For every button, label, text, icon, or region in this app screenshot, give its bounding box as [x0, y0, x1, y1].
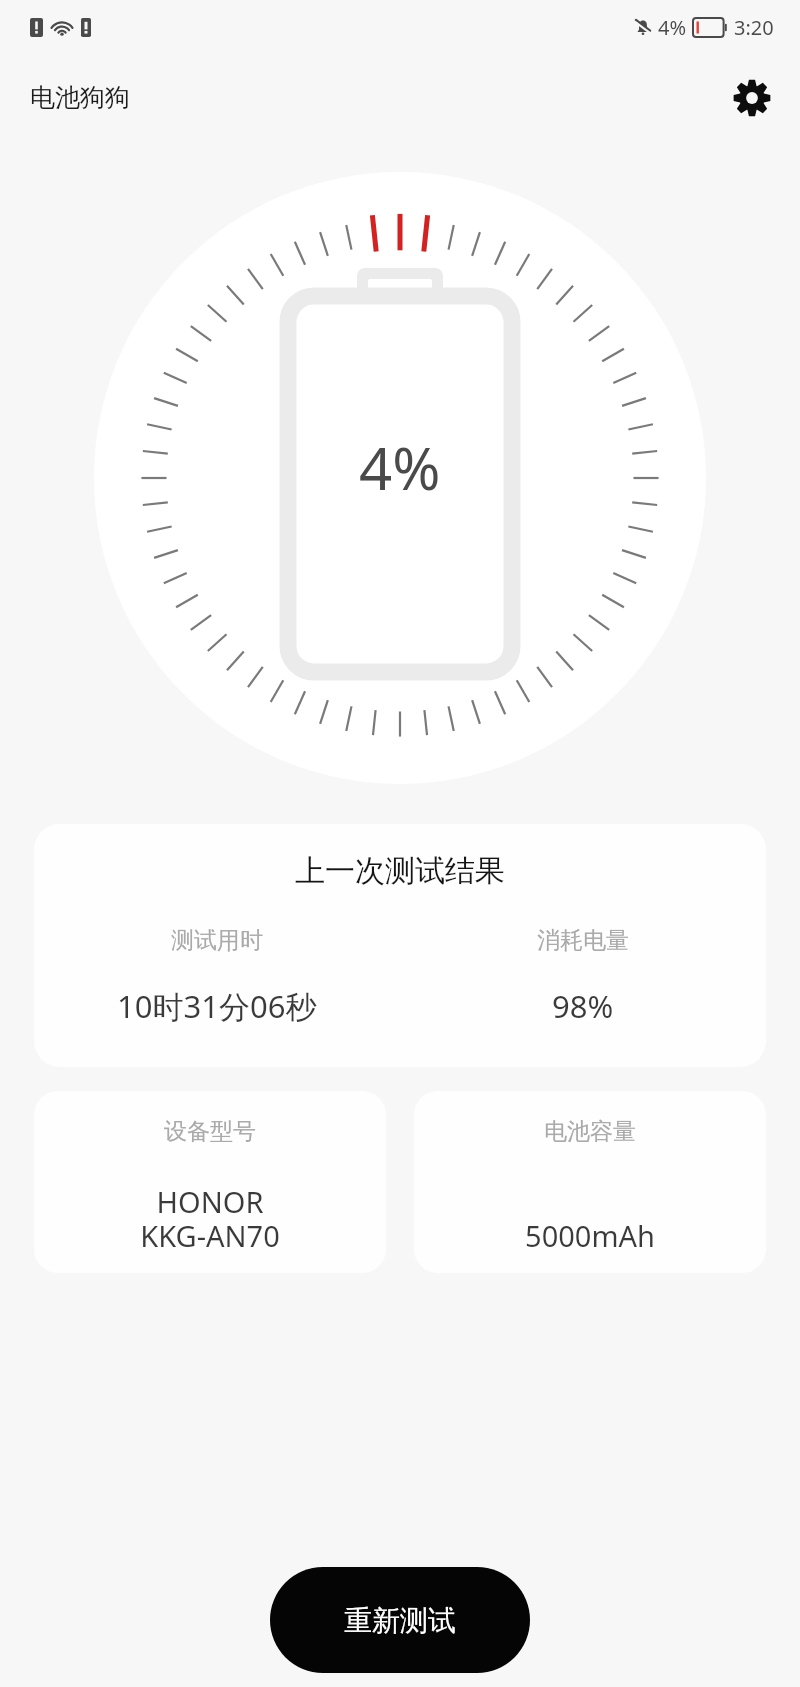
- staticText: 电池狗狗: [30, 82, 130, 113]
- staticText: 10时31分06秒: [117, 985, 317, 1027]
- staticText: 消耗电量: [537, 926, 629, 955]
- button[interactable]: 设备型号: [34, 1091, 386, 1273]
- staticText: 98%: [552, 985, 614, 1027]
- staticText: 3:20: [734, 14, 774, 41]
- button[interactable]: 重新测试: [270, 1567, 530, 1673]
- staticText: 4%: [359, 428, 441, 507]
- staticText: 上一次测试结果: [295, 852, 505, 890]
- staticText: 5000mAh: [525, 1216, 655, 1255]
- staticText: 设备型号: [164, 1117, 256, 1146]
- staticText: 电池容量: [544, 1117, 636, 1146]
- button[interactable]: 上一次测试结果: [34, 824, 766, 1067]
- staticText: 4%: [658, 14, 687, 41]
- staticText: 测试用时: [171, 926, 263, 955]
- button[interactable]: Settings: [726, 72, 778, 124]
- staticText: HONOR KKG-AN70: [140, 1182, 280, 1255]
- staticText: 重新测试: [344, 1603, 456, 1638]
- button[interactable]: 电池容量: [414, 1091, 766, 1273]
